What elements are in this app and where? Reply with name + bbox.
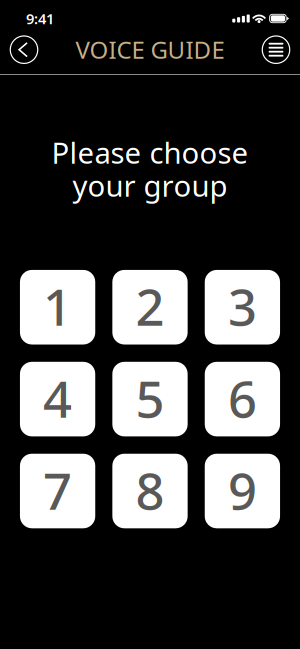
button[interactable]: 3 xyxy=(205,270,280,344)
button[interactable]: 8 xyxy=(112,454,188,528)
staticText: 4 xyxy=(43,364,72,432)
staticText: 6 xyxy=(228,364,257,432)
staticText: 9 xyxy=(228,456,257,524)
staticText: Please choose xyxy=(51,133,248,172)
staticText: 8 xyxy=(135,456,164,524)
staticText: 9:41 xyxy=(26,9,54,28)
staticText: VOICE GUIDE xyxy=(75,33,224,65)
staticText: 5 xyxy=(135,364,164,432)
button[interactable]: Menu xyxy=(254,28,298,72)
staticText: your group xyxy=(72,166,227,205)
button[interactable]: 7 xyxy=(20,454,95,528)
button[interactable]: 5 xyxy=(112,362,188,436)
button[interactable]: 6 xyxy=(205,362,280,436)
staticText: 1 xyxy=(43,273,72,340)
staticText: 2 xyxy=(135,273,164,340)
button[interactable]: 1 xyxy=(20,270,95,344)
staticText: 7 xyxy=(43,456,72,524)
button[interactable]: 4 xyxy=(20,362,95,436)
button[interactable]: 9 xyxy=(205,454,280,528)
button[interactable]: 2 xyxy=(112,270,188,344)
staticText: 3 xyxy=(228,273,257,340)
button[interactable]: Back xyxy=(2,28,46,72)
